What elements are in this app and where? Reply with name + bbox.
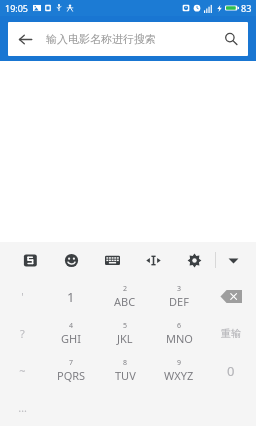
staticText: 7 <box>69 358 74 368</box>
staticText: 19:05 <box>5 2 29 14</box>
staticText: 6 <box>177 321 182 331</box>
button[interactable]: 6 <box>152 315 206 352</box>
button[interactable]: 4 <box>44 315 98 352</box>
staticText: ~ <box>19 363 26 378</box>
staticText: ABC <box>114 294 136 309</box>
button[interactable]: 重输 <box>206 315 256 352</box>
button[interactable]: Back <box>8 22 248 56</box>
staticText: 4 <box>69 321 74 331</box>
button[interactable]: Hide keyboard <box>216 242 250 278</box>
staticText: 输入电影名称进行搜索 <box>46 32 156 46</box>
staticText: 3 <box>177 284 182 294</box>
staticText: ? <box>20 326 25 341</box>
button[interactable]: Keyboard layout <box>92 242 133 278</box>
button[interactable]: 5 <box>98 315 152 352</box>
staticText: MNO <box>166 331 193 346</box>
button[interactable]: Backspace <box>206 278 256 315</box>
staticText: ' <box>21 289 24 304</box>
staticText: 8 <box>123 358 128 368</box>
button[interactable]: Settings <box>174 242 215 278</box>
button[interactable]: Back <box>8 22 42 56</box>
button[interactable]: 0 <box>206 352 256 389</box>
button[interactable]: Search <box>214 22 248 56</box>
staticText: 9 <box>177 358 182 368</box>
staticText: 0 <box>227 362 235 380</box>
staticText: 重输 <box>221 327 241 340</box>
staticText: DEF <box>169 294 189 309</box>
staticText: TUV <box>115 368 136 383</box>
staticText: 5 <box>123 321 128 331</box>
button[interactable]: 3 <box>152 278 206 315</box>
button[interactable]: 1 <box>44 278 98 315</box>
staticText: 2 <box>123 284 128 294</box>
button[interactable]: 7 <box>44 352 98 389</box>
button[interactable]: Cursor move <box>133 242 174 278</box>
staticText: PQRS <box>57 368 86 383</box>
staticText: … <box>18 400 27 415</box>
button[interactable]: Emoji <box>51 242 92 278</box>
button[interactable]: 8 <box>98 352 152 389</box>
staticText: 1 <box>67 288 75 306</box>
button[interactable]: Sogou input <box>10 242 51 278</box>
button[interactable]: 2 <box>98 278 152 315</box>
staticText: WXYZ <box>164 368 194 383</box>
staticText: 83 <box>241 2 252 14</box>
button[interactable]: ? <box>0 315 44 352</box>
staticText: JKL <box>117 331 133 346</box>
button[interactable]: 9 <box>152 352 206 389</box>
staticText: GHI <box>61 331 81 346</box>
